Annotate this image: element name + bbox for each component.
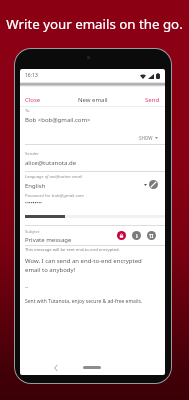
staticText: Subject: [25, 229, 40, 235]
staticText: Wow, I can send an end-to-end encrypted …: [25, 257, 156, 274]
staticText: Language of notification email: [25, 174, 82, 180]
button[interactable]: Edit: [149, 180, 158, 189]
staticText: New email: [78, 96, 108, 104]
other: Back: [54, 365, 58, 371]
staticText: Sent with Tutanota, enjoy secure & ad-fr…: [25, 298, 143, 305]
staticText: TI: [149, 233, 154, 239]
staticText: To: [25, 108, 30, 114]
staticText: English: [25, 182, 46, 190]
button[interactable]: Info: [132, 231, 141, 240]
staticText: Write your emails on the go.: [0, 15, 189, 33]
staticText: 16:13: [25, 72, 38, 79]
staticText: i: [136, 232, 138, 239]
staticText: --: [25, 284, 29, 291]
staticText: Bob <bob@gmail.com>: [25, 116, 91, 124]
other: Home: [83, 366, 101, 369]
staticText: Private message: [25, 236, 72, 244]
button[interactable]: Encryption: [117, 231, 126, 240]
staticText: Sender: [25, 151, 39, 157]
staticText: This message will be sent end-to-end enc…: [25, 247, 120, 253]
button[interactable]: Close: [20, 96, 41, 104]
button[interactable]: SHOW: [136, 133, 161, 143]
staticText: Password for bob@gmail.com: [25, 193, 84, 199]
button[interactable]: Send: [145, 96, 165, 104]
staticText: SHOW: [139, 135, 153, 141]
staticText: •••••••••: [25, 200, 42, 207]
staticText: alice@tutanota.de: [25, 159, 77, 167]
button[interactable]: Attachments: [147, 231, 156, 240]
